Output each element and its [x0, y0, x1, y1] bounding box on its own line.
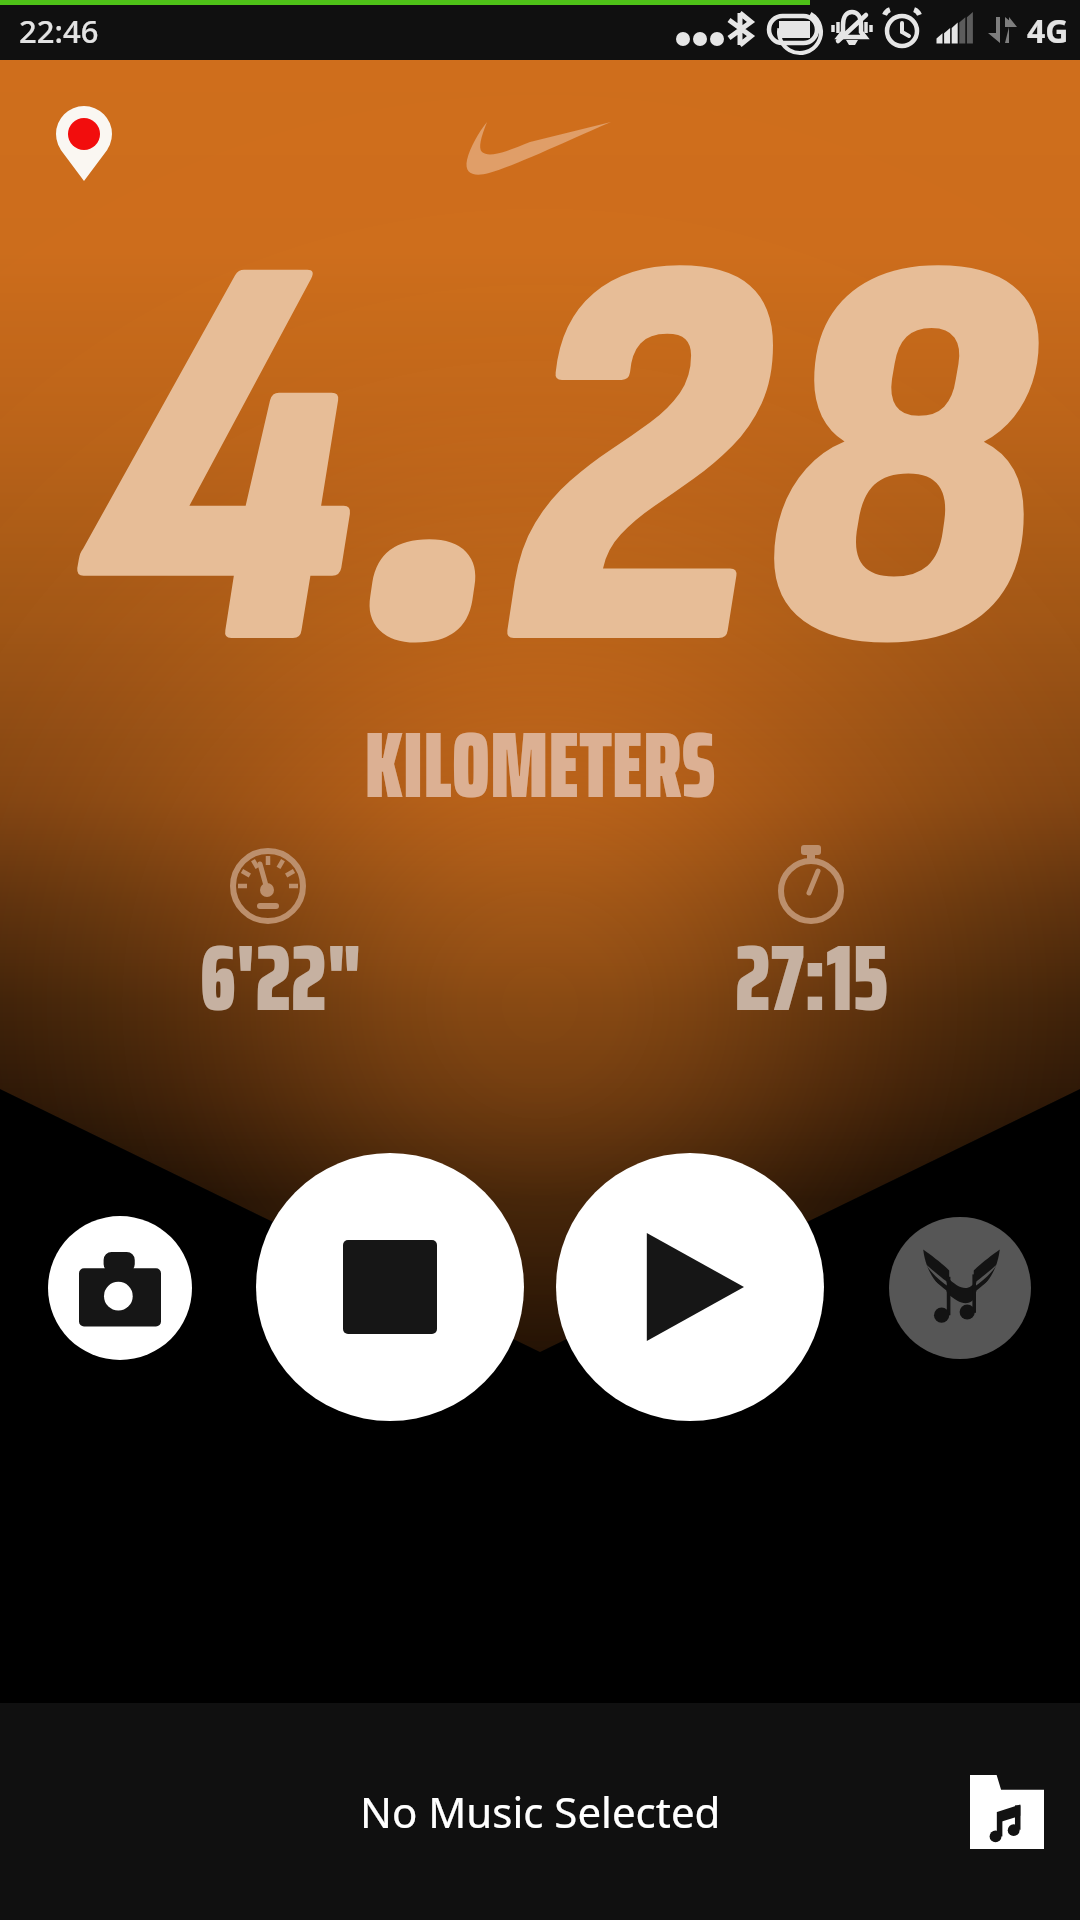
button[interactable]: No Music Selected — [0, 1703, 1080, 1920]
staticText: No Music Selected — [360, 1783, 721, 1840]
staticText: 6'22" — [200, 906, 363, 1051]
button[interactable]: Stop — [256, 1153, 524, 1421]
button[interactable]: Music folder — [970, 1775, 1044, 1849]
button[interactable]: Music — [889, 1217, 1031, 1359]
staticText: 4G — [1027, 9, 1069, 53]
staticText: 27:15 — [735, 906, 889, 1051]
button[interactable]: Resume — [556, 1153, 824, 1421]
staticText: 22:46 — [19, 10, 99, 52]
button[interactable]: Camera — [48, 1216, 192, 1360]
staticText: KILOMETERS — [0, 693, 1080, 838]
staticText: 4.28 — [18, 132, 1080, 806]
